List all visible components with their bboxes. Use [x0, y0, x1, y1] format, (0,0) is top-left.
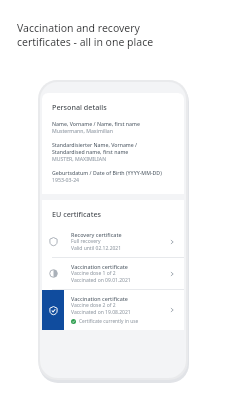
staticText: Vaccine dose 1 of 2	[71, 270, 116, 277]
staticText: EU certificates	[52, 209, 102, 219]
staticText: Valid until 02.12.2021	[71, 245, 122, 252]
other: Open Vaccination certificate	[169, 271, 175, 277]
other: Open Vaccination certificate	[169, 307, 175, 313]
staticText: Vaccination certificate	[71, 263, 128, 270]
staticText: Name, Vorname / Name, first name	[52, 120, 140, 127]
staticText: Mustermann, Maximilian	[52, 127, 113, 134]
staticText: Personal details	[52, 102, 107, 112]
button[interactable]: Vaccination certificate	[42, 258, 184, 289]
staticText: Vaccination and recovery	[17, 21, 140, 35]
staticText: certificates - all in one place	[17, 35, 154, 49]
staticText: Standardised name, first name	[52, 148, 129, 155]
staticText: Vaccinated on 09.01.2021	[71, 277, 131, 284]
staticText: MUSTER, MAXIMILIAN	[52, 155, 107, 162]
button[interactable]: Vaccination certificate	[42, 290, 184, 330]
staticText: Full recovery	[71, 238, 101, 245]
staticText: Vaccinated on 19.08.2021	[71, 309, 131, 316]
staticText: Geburtsdatum / Date of Birth (YYYY-MM-DD…	[52, 169, 162, 176]
staticText: Vaccine dose 2 of 2	[71, 302, 116, 309]
staticText: Recovery certificate	[71, 231, 122, 238]
staticText: 1953-03-24	[52, 176, 80, 183]
other: Open Recovery certificate	[169, 239, 175, 245]
staticText: Vaccination certificate	[71, 295, 128, 302]
staticText: Standardisierter Name, Vorname /	[52, 141, 138, 148]
staticText: Certificate currently in use	[79, 318, 139, 325]
button[interactable]: Recovery certificate	[42, 226, 184, 257]
